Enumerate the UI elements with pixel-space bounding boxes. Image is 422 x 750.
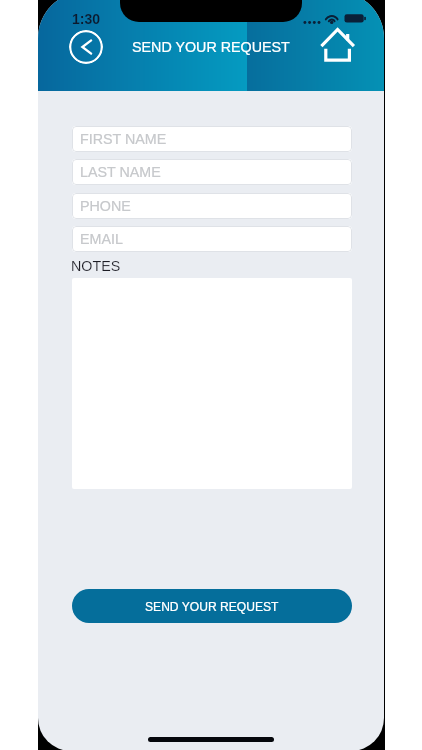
staticText: PHONE [80, 198, 131, 214]
button[interactable]: LAST NAME [72, 159, 352, 185]
staticText: LAST NAME [80, 164, 161, 180]
staticText: SEND YOUR REQUEST [132, 39, 290, 55]
button[interactable]: Home [319, 27, 356, 63]
button[interactable]: SEND YOUR REQUEST [72, 589, 352, 623]
staticText: FIRST NAME [80, 131, 167, 147]
staticText: SEND YOUR REQUEST [145, 600, 279, 614]
button[interactable]: Back [69, 30, 103, 64]
button[interactable]: FIRST NAME [72, 126, 352, 152]
staticText: NOTES [71, 258, 121, 274]
button[interactable]: EMAIL [72, 226, 352, 252]
button[interactable]: PHONE [72, 193, 352, 219]
staticText: 1:30 [72, 11, 101, 27]
staticText: EMAIL [80, 231, 123, 247]
